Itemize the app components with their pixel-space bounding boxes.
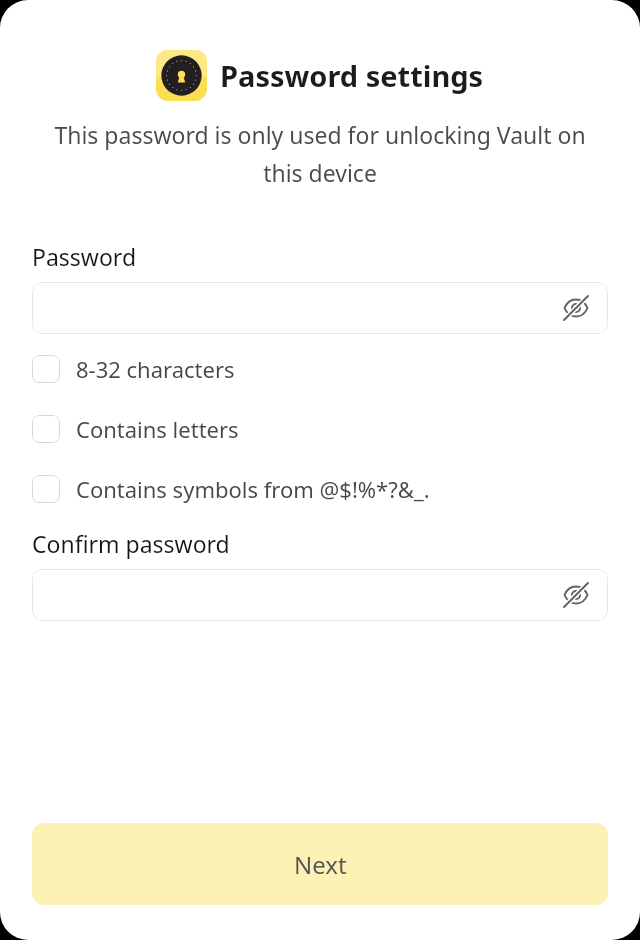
button[interactable]: Contains letters bbox=[32, 414, 608, 444]
button[interactable]: Show password bbox=[32, 569, 608, 621]
staticText: Next bbox=[294, 848, 347, 881]
staticText: Contains letters bbox=[76, 414, 239, 444]
button[interactable]: Show password bbox=[32, 282, 608, 334]
button[interactable]: Next bbox=[32, 823, 608, 905]
staticText: Confirm password bbox=[32, 528, 230, 559]
staticText: Password bbox=[32, 241, 137, 272]
button[interactable]: Show password bbox=[556, 288, 596, 328]
button[interactable]: 8-32 characters bbox=[32, 354, 608, 384]
staticText: Contains symbols from @$!%*?&_. bbox=[76, 474, 430, 504]
staticText: Password settings bbox=[220, 56, 484, 95]
staticText: This password is only used for unlocking… bbox=[34, 119, 606, 189]
button[interactable]: Show password bbox=[556, 575, 596, 615]
staticText: 8-32 characters bbox=[76, 354, 235, 384]
button[interactable]: Contains symbols from @$!%*?&_. bbox=[32, 474, 608, 504]
